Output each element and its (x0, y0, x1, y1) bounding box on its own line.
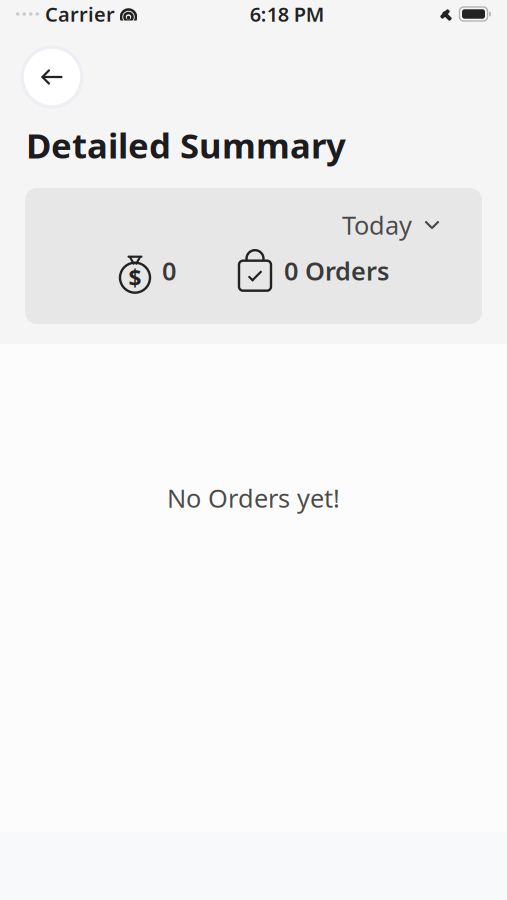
button[interactable]: Back (19, 44, 85, 110)
staticText: $ (128, 263, 141, 293)
staticText: Carrier (45, 1, 115, 27)
staticText: 0 Orders (284, 254, 389, 287)
button[interactable]: Today (336, 204, 446, 246)
staticText: 6:18 PM (250, 1, 325, 27)
staticText: 0 (162, 254, 176, 287)
staticText: Today (342, 208, 412, 242)
staticText: Detailed Summary (26, 122, 346, 168)
staticText: No Orders yet! (167, 481, 340, 515)
